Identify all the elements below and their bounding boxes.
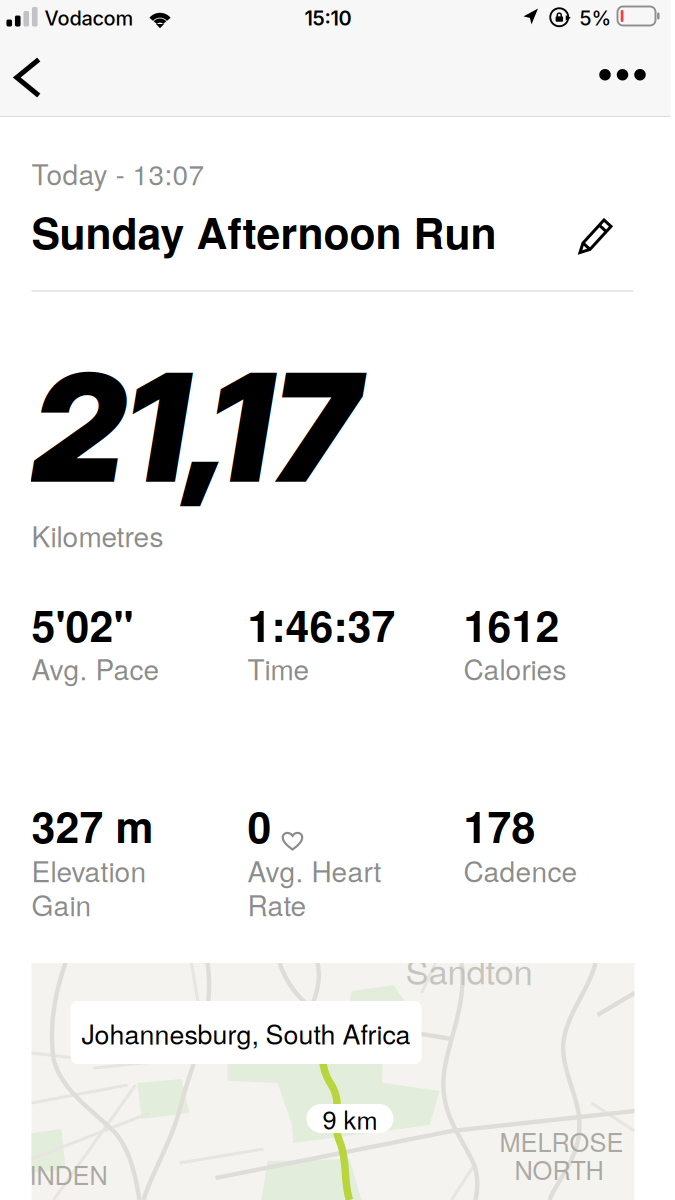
staticText: 15:10 — [304, 6, 351, 30]
staticText: NORTH — [514, 1151, 603, 1187]
staticText: Gain — [31, 884, 91, 924]
staticText: Cadence — [463, 850, 577, 890]
staticText: Elevation — [31, 850, 146, 890]
staticText: 21,17 — [31, 337, 357, 518]
staticText: 178 — [463, 795, 535, 856]
button[interactable]: Back — [0, 46, 63, 116]
staticText: Sandton — [405, 945, 532, 995]
staticText: Today - 13:07 — [31, 153, 204, 193]
staticText: 1:46:37 — [247, 594, 395, 655]
staticText: Vodacom — [44, 6, 133, 30]
staticText: 5'02'' — [31, 594, 133, 655]
staticText: Kilometres — [31, 515, 163, 555]
staticText: INDEN — [29, 1156, 107, 1192]
staticText: MELROSE — [499, 1123, 623, 1159]
staticText: Avg. Pace — [31, 648, 159, 688]
staticText: 1612 — [463, 594, 559, 655]
staticText: Time — [247, 648, 309, 688]
staticText: 9 km — [322, 1100, 377, 1137]
button[interactable]: Edit — [563, 206, 631, 265]
staticText: Johannesburg, South Africa — [81, 1014, 410, 1052]
staticText: 327 m — [31, 795, 153, 856]
staticText: Calories — [463, 648, 566, 688]
staticText: Sunday Afternoon Run — [31, 201, 496, 262]
button[interactable]: More options — [573, 46, 674, 105]
staticText: Avg. Heart — [247, 850, 381, 890]
staticText: 5% — [579, 6, 611, 30]
staticText: 0 — [247, 795, 271, 856]
staticText: Rate — [247, 884, 306, 924]
